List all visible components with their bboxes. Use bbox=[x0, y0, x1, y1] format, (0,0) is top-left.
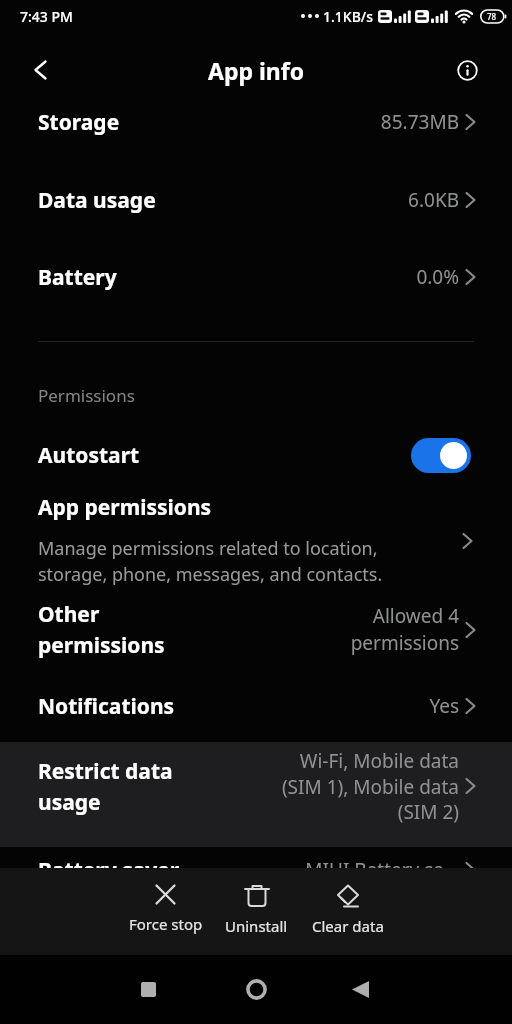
button[interactable] bbox=[26, 56, 54, 84]
staticText: Autostart bbox=[38, 441, 140, 470]
button[interactable] bbox=[454, 57, 480, 83]
button[interactable]: App permissions bbox=[0, 484, 512, 594]
staticText: 7:43 PM bbox=[20, 7, 73, 26]
staticText: Wi-Fi, Mobile data (SIM 1), Mobile data … bbox=[281, 748, 459, 824]
staticText: MIUI Battery sa… bbox=[305, 857, 459, 883]
staticText: Uninstall bbox=[225, 916, 288, 936]
button[interactable]: Autostart bbox=[0, 423, 512, 487]
button[interactable]: Notifications bbox=[0, 674, 512, 738]
staticText: Clear data bbox=[312, 916, 384, 936]
staticText: 6.0KB bbox=[408, 187, 459, 213]
staticText: Battery saver bbox=[38, 856, 180, 885]
staticText: Force stop bbox=[129, 914, 203, 934]
staticText: App info bbox=[208, 55, 305, 86]
staticText: Allowed 4 permissions bbox=[350, 603, 459, 656]
staticText: Yes bbox=[429, 693, 459, 719]
staticText: Storage bbox=[38, 108, 120, 137]
staticText: Battery bbox=[38, 263, 117, 292]
button[interactable] bbox=[338, 974, 382, 1004]
button[interactable]: Battery saver bbox=[0, 838, 512, 902]
staticText: 78 bbox=[487, 11, 497, 22]
staticText: Restrict data usage bbox=[38, 757, 173, 816]
button[interactable]: Other permissions bbox=[0, 598, 512, 660]
button[interactable]: Uninstall bbox=[211, 868, 302, 955]
button[interactable]: Battery bbox=[0, 245, 512, 309]
staticText: Manage permissions related to location, … bbox=[38, 536, 383, 586]
button[interactable] bbox=[126, 974, 170, 1004]
button[interactable] bbox=[234, 974, 278, 1004]
staticText: Other permissions bbox=[38, 600, 165, 659]
button[interactable]: Storage bbox=[0, 90, 512, 154]
staticText: 1.1KB/s bbox=[323, 7, 374, 26]
button[interactable]: Clear data bbox=[302, 868, 393, 955]
staticText: Notifications bbox=[38, 692, 175, 721]
staticText: App permissions bbox=[38, 493, 212, 522]
button[interactable] bbox=[411, 438, 471, 473]
button[interactable]: Data usage bbox=[0, 168, 512, 232]
staticText: 85.73MB bbox=[380, 109, 459, 135]
staticText: 0.0% bbox=[416, 264, 459, 290]
staticText: Permissions bbox=[38, 384, 135, 407]
staticText: Data usage bbox=[38, 186, 156, 215]
button[interactable]: Force stop bbox=[120, 868, 211, 955]
button[interactable]: Restrict data usage bbox=[0, 742, 512, 830]
